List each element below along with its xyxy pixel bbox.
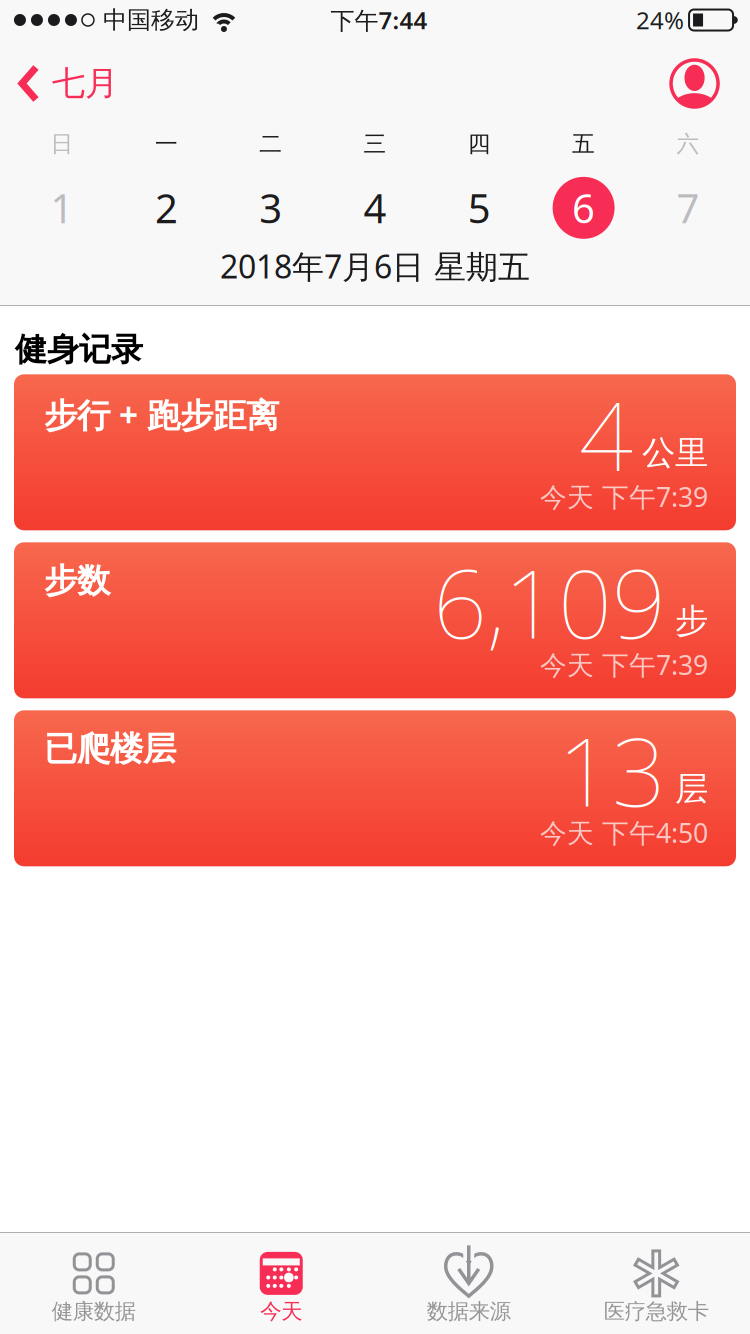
staticText: 一 [155, 130, 178, 158]
button[interactable]: 2 [114, 177, 219, 239]
staticText: 4 [363, 181, 386, 234]
staticText: 已爬楼层 [44, 728, 176, 769]
staticText: 层 [675, 768, 708, 809]
button[interactable]: 医疗急救卡 [562, 1242, 750, 1325]
staticText: 日 [51, 130, 74, 158]
staticText: 6,109 [433, 539, 666, 665]
button[interactable]: 今天 [187, 1242, 375, 1325]
staticText: 1 [51, 181, 74, 234]
staticText: 13 [558, 707, 666, 833]
staticText: 2018年7月6日 星期五 [220, 245, 530, 287]
staticText: 下午7:44 [330, 4, 427, 36]
staticText: 步行 + 跑步距离 [44, 392, 279, 437]
staticText: 七月 [52, 63, 118, 104]
staticText: 步 [675, 600, 708, 641]
staticText: 今天 下午7:39 [540, 647, 708, 682]
button[interactable]: 5 [427, 177, 531, 239]
staticText: 四 [468, 130, 491, 158]
button[interactable]: 6 [531, 177, 636, 239]
button[interactable]: 七月 [0, 52, 118, 104]
button[interactable]: 步行 + 跑步距离 [14, 374, 736, 530]
staticText: 公里 [642, 432, 708, 473]
staticText: 步数 [44, 560, 110, 601]
staticText: 今天 [260, 1298, 302, 1325]
staticText: 24% [636, 4, 684, 36]
button[interactable]: 健康资料 [671, 49, 750, 107]
staticText: 数据来源 [427, 1298, 511, 1325]
staticText: 今天 下午4:50 [540, 815, 708, 850]
staticText: 4 [579, 371, 633, 497]
staticText: 5 [468, 181, 491, 234]
button[interactable]: 已爬楼层 [14, 710, 736, 866]
button[interactable]: 3 [219, 177, 323, 239]
staticText: 健康数据 [52, 1298, 136, 1325]
staticText: 2 [155, 181, 178, 234]
button[interactable]: 1 [10, 177, 114, 239]
staticText: 六 [676, 130, 699, 158]
staticText: 3 [259, 181, 282, 234]
button[interactable]: 步数 [14, 542, 736, 698]
staticText: 7 [676, 181, 699, 234]
staticText: 三 [363, 130, 386, 158]
staticText: 医疗急救卡 [604, 1298, 709, 1325]
button[interactable]: 健康数据 [0, 1242, 187, 1325]
staticText: 中国移动 [103, 5, 199, 35]
button[interactable]: 4 [323, 177, 427, 239]
staticText: 五 [572, 130, 595, 158]
staticText: 健身记录 [15, 330, 143, 369]
button[interactable]: 7 [636, 177, 740, 239]
staticText: 二 [259, 130, 282, 158]
staticText: 今天 下午7:39 [540, 479, 708, 514]
staticText: 6 [572, 181, 595, 234]
button[interactable]: 数据来源 [375, 1242, 562, 1325]
